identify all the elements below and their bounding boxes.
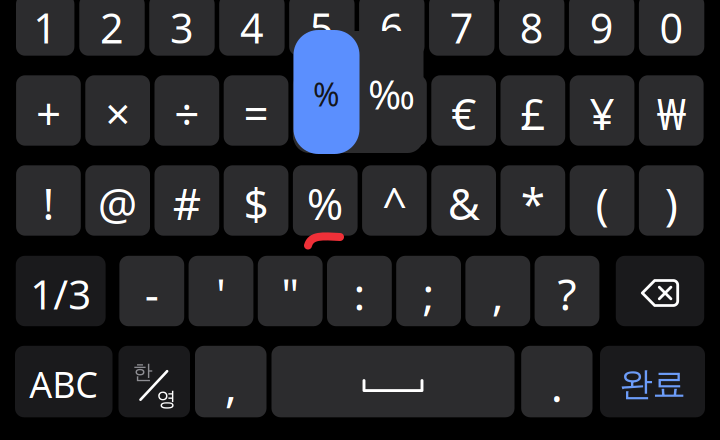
staticText: , [225, 354, 237, 415]
staticText: 9 [590, 0, 614, 55]
staticText: 영 [157, 387, 177, 411]
staticText: ' [216, 264, 226, 323]
staticText: × [105, 84, 130, 142]
staticText: . [551, 354, 563, 415]
staticText: + [36, 84, 61, 142]
staticText: ( [596, 174, 609, 232]
button[interactable]: ! [16, 165, 81, 236]
button[interactable]: = [224, 75, 288, 146]
button[interactable]: # [154, 165, 219, 236]
button[interactable]: ₩ [639, 75, 704, 146]
button[interactable]: - [119, 256, 184, 326]
button[interactable]: % [293, 32, 359, 156]
staticText: 6 [380, 0, 404, 55]
button[interactable]: € [431, 75, 496, 146]
button[interactable]: " [258, 256, 323, 326]
button[interactable]: 9 [569, 0, 634, 56]
staticText: ‰ [368, 67, 415, 120]
button[interactable]: £ [500, 75, 565, 146]
staticText: ₩ [657, 84, 686, 142]
button[interactable]: , [195, 346, 266, 417]
button[interactable]: ; [396, 256, 461, 326]
button[interactable]: Space [271, 346, 514, 417]
staticText: 한 [133, 360, 153, 384]
button[interactable]: ? [535, 256, 599, 326]
button[interactable]: * [500, 165, 565, 236]
button[interactable]: + [16, 75, 81, 146]
staticText: % [307, 174, 344, 232]
staticText: = [244, 84, 269, 142]
staticText: , [492, 264, 504, 323]
button[interactable]: ‰ [362, 75, 427, 146]
staticText: 0 [660, 0, 684, 55]
button[interactable]: 7 [429, 0, 494, 56]
button[interactable]: ) [639, 165, 704, 236]
staticText: 1 [33, 0, 57, 55]
staticText: 5 [310, 0, 334, 55]
staticText: # [173, 174, 201, 232]
button[interactable]: 0 [639, 0, 704, 56]
staticText: : [353, 264, 365, 323]
staticText: ABC [29, 360, 98, 408]
staticText: ? [557, 264, 576, 323]
button[interactable]: 1/3 [16, 256, 106, 326]
button[interactable]: 6 [359, 0, 424, 56]
staticText: " [281, 264, 299, 323]
button[interactable]: ABC [15, 346, 112, 417]
staticText: - [145, 264, 159, 323]
button[interactable]: 5 [289, 0, 355, 56]
staticText: 4 [240, 0, 264, 55]
staticText: 2 [100, 0, 124, 55]
staticText: ‰ [368, 84, 420, 142]
staticText: £ [520, 84, 545, 142]
staticText: 1/3 [30, 267, 91, 320]
button[interactable]: ‰ [360, 33, 422, 155]
button[interactable]: , [465, 256, 530, 326]
button[interactable]: 8 [499, 0, 564, 56]
button[interactable]: @ [85, 165, 150, 236]
button[interactable]: 2 [79, 0, 145, 56]
staticText: 7 [450, 0, 474, 55]
button[interactable]: : [327, 256, 392, 326]
button[interactable]: 3 [149, 0, 215, 56]
staticText: @ [98, 174, 138, 232]
staticText: ) [665, 174, 678, 232]
staticText: ¥ [590, 84, 615, 142]
staticText: % [313, 73, 340, 115]
staticText: & [448, 174, 480, 232]
button[interactable]: × [85, 75, 150, 146]
button[interactable]: ( [570, 165, 634, 236]
staticText: € [451, 84, 476, 142]
button[interactable]: 1 [16, 0, 74, 56]
button[interactable]: Delete [616, 256, 704, 326]
button[interactable]: . [521, 346, 592, 417]
button[interactable]: ÷ [154, 75, 219, 146]
button[interactable]: $ [224, 165, 288, 236]
button[interactable]: Korean English toggle [118, 346, 190, 417]
button[interactable]: ¥ [570, 75, 634, 146]
staticText: ÷ [174, 84, 199, 142]
staticText: % [307, 84, 344, 142]
button[interactable]: 4 [219, 0, 285, 56]
button[interactable]: % [293, 75, 358, 146]
staticText: 3 [170, 0, 194, 55]
button[interactable]: & [431, 165, 496, 236]
button[interactable]: % [293, 165, 358, 236]
staticText: 8 [520, 0, 544, 55]
staticText: * [521, 174, 545, 232]
button[interactable]: ' [189, 256, 253, 326]
staticText: 완료 [619, 364, 685, 404]
staticText: ^ [382, 174, 407, 232]
button[interactable]: 완료 [600, 346, 705, 417]
staticText: ; [423, 264, 435, 323]
staticText: $ [244, 174, 269, 232]
button[interactable]: ^ [362, 165, 427, 236]
staticText: ! [42, 174, 54, 232]
